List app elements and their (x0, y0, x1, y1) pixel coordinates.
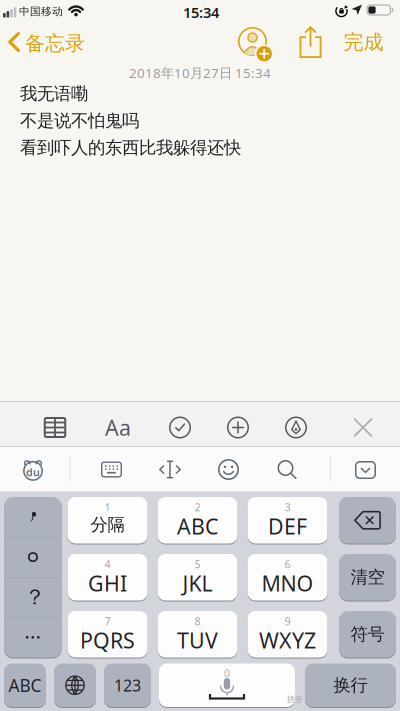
staticText: 看到吓人的东西比我躲得还快 (20, 137, 241, 158)
staticText: ABC (8, 674, 41, 697)
staticText: du (26, 465, 40, 479)
staticText: 我无语嘞 (20, 83, 88, 104)
staticText: 1 (104, 500, 110, 514)
button[interactable]: 关闭 (343, 407, 383, 447)
button[interactable]: 插入表格 (35, 407, 75, 447)
staticText: DEF (268, 512, 307, 540)
button[interactable]: 切换输入法 (54, 663, 96, 707)
button[interactable]: 添加联系人 (238, 27, 272, 61)
button[interactable]: DEF (247, 497, 327, 543)
button[interactable]: JKL (157, 554, 237, 600)
staticText: 中国移动 (19, 5, 63, 18)
button[interactable]: 百度输入法菜单 (11, 447, 55, 491)
button[interactable]: 句号 (4, 537, 61, 577)
button[interactable]: 分享 (299, 26, 321, 58)
staticText: 9 (284, 614, 290, 628)
button[interactable]: GHI (67, 554, 147, 600)
staticText: 3 (284, 500, 290, 514)
staticText: TUV (177, 626, 218, 654)
button[interactable]: 逗号 (4, 497, 61, 537)
button[interactable]: 添加附件 (218, 407, 258, 447)
button[interactable]: 空格 (159, 663, 295, 707)
staticText: WXYZ (259, 626, 316, 654)
button[interactable]: 备忘录 (0, 31, 95, 53)
button[interactable]: 123 (104, 663, 151, 707)
staticText: 清空 (350, 567, 384, 588)
staticText: 分隔 (90, 514, 124, 535)
button[interactable]: 问号 (4, 577, 61, 617)
button[interactable]: PQRS (67, 611, 147, 657)
button[interactable]: 表情 (206, 447, 250, 491)
staticText: 换行 (333, 675, 367, 696)
staticText: ？ (24, 584, 45, 610)
button[interactable]: 标记 (276, 407, 316, 447)
button[interactable]: TUV (157, 611, 237, 657)
staticText: 5 (194, 557, 200, 571)
button[interactable]: 收起键盘 (343, 448, 387, 492)
staticText: 123 (114, 675, 141, 696)
button[interactable]: 符号 (339, 611, 396, 657)
button[interactable]: 清空 (339, 554, 396, 600)
staticText: 0 (224, 666, 230, 680)
staticText: 2 (194, 500, 200, 514)
staticText: 15:34 (183, 2, 219, 22)
staticText: 备忘录 (25, 31, 85, 56)
button[interactable]: MNO (247, 554, 327, 600)
staticText: PQRS (80, 626, 135, 654)
staticText: 2018年10月27日 15:34 (129, 64, 271, 82)
button[interactable]: 光标移动 (148, 447, 192, 491)
button[interactable]: ABC (157, 497, 237, 543)
button[interactable]: 键盘切换 (89, 447, 133, 491)
button[interactable]: 换行 (305, 663, 396, 707)
staticText: 8 (194, 614, 200, 628)
button[interactable]: 核对清单 (160, 407, 200, 447)
button[interactable]: 搜索 (265, 447, 309, 491)
staticText: 4 (104, 557, 110, 571)
staticText: 7 (104, 614, 110, 628)
staticText: 6 (284, 557, 290, 571)
button[interactable]: 分隔 (67, 497, 147, 543)
staticText: JKL (182, 569, 212, 597)
staticText: 拼音 (287, 694, 303, 704)
staticText: 不是说不怕鬼吗 (20, 110, 139, 131)
button[interactable]: 省略号 (4, 617, 61, 657)
staticText: GHI (88, 569, 127, 597)
staticText: MNO (261, 569, 313, 597)
staticText: Aa (105, 413, 131, 442)
button[interactable]: 删除 (339, 497, 396, 543)
button[interactable]: 格式 (98, 407, 138, 447)
button[interactable]: WXYZ (247, 611, 327, 657)
staticText: 符号 (350, 624, 384, 645)
button[interactable]: ABC (4, 663, 46, 707)
staticText: 完成 (343, 30, 383, 55)
staticText: ABC (177, 512, 218, 540)
button[interactable]: 完成 (338, 30, 388, 55)
